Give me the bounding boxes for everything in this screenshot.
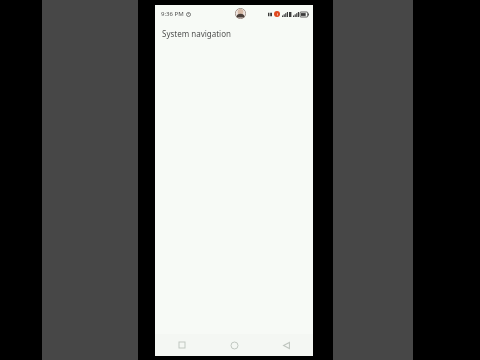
staticText: System navigation xyxy=(162,28,231,39)
button[interactable]: Home xyxy=(224,335,244,355)
button[interactable]: Recent apps xyxy=(172,335,192,355)
staticText: 9:36 PM xyxy=(161,10,184,18)
button[interactable]: Back xyxy=(276,335,296,355)
button[interactable]: System navigation xyxy=(155,22,313,44)
